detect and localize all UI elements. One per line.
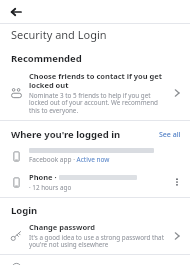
staticText: Choose friends to contact if you get loc… — [29, 71, 168, 90]
button[interactable]: Change password — [0, 219, 190, 254]
staticText: Login — [11, 204, 38, 217]
button[interactable]: More options — [170, 175, 184, 189]
staticText: Change password — [29, 222, 96, 232]
staticText: Where you're logged in — [11, 128, 121, 141]
button[interactable]: Facebook app · Active now — [0, 144, 190, 168]
staticText: Facebook app · Active now — [29, 155, 110, 164]
staticText: See all — [159, 130, 181, 140]
button[interactable]: Choose friends to contact if you get loc… — [0, 68, 190, 120]
button[interactable]: See all — [159, 130, 181, 140]
button[interactable]: Back — [6, 2, 26, 22]
staticText: Security and Login — [11, 27, 107, 42]
staticText: Phone · — [29, 172, 57, 182]
staticText: Nominate 3 to 5 friends to help if you g… — [29, 91, 168, 115]
button[interactable]: Phone · — [0, 168, 190, 197]
staticText: It's a good idea to use a strong passwor… — [29, 233, 168, 249]
staticText: Recommended — [11, 52, 82, 65]
staticText: · 12 hours ago — [29, 183, 72, 192]
